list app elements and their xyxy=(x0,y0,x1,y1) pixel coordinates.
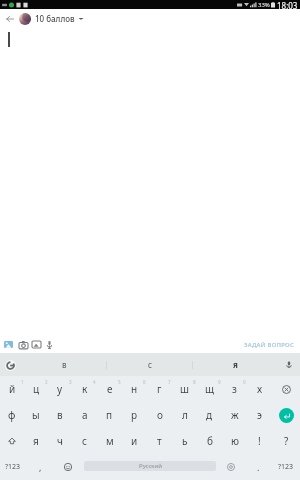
button[interactable]: с xyxy=(72,428,97,454)
staticText: б xyxy=(207,434,213,448)
button[interactable]: 9 xyxy=(197,376,222,402)
button[interactable]: Gallery xyxy=(30,336,43,353)
staticText: ю xyxy=(231,434,239,448)
button[interactable]: я xyxy=(193,353,278,376)
staticText: н xyxy=(131,382,138,396)
staticText: р xyxy=(131,408,138,422)
button[interactable]: 4 xyxy=(72,376,97,402)
button[interactable]: 8 xyxy=(172,376,197,402)
staticText: л xyxy=(182,408,188,422)
button[interactable]: а xyxy=(72,402,97,428)
button[interactable]: Backspace xyxy=(272,376,300,402)
button[interactable]: 5 xyxy=(97,376,122,402)
staticText: к xyxy=(82,382,88,396)
button[interactable]: ЗАДАЙ ВОПРОС xyxy=(236,336,300,353)
button[interactable]: Keyboard settings xyxy=(218,454,244,480)
button[interactable]: Русский xyxy=(84,461,216,471)
staticText: с xyxy=(82,434,87,448)
staticText: у xyxy=(57,382,63,396)
button[interactable]: п xyxy=(97,402,122,428)
staticText: 1 xyxy=(21,379,24,385)
button[interactable]: Voice input xyxy=(283,359,295,371)
staticText: я xyxy=(233,359,238,370)
staticText: д xyxy=(206,408,213,422)
staticText: а xyxy=(82,408,88,422)
button[interactable]: ?123 xyxy=(272,454,300,480)
button[interactable]: 10 баллов xyxy=(19,8,84,29)
staticText: ? xyxy=(284,434,289,448)
button[interactable]: р xyxy=(122,402,147,428)
button[interactable]: д xyxy=(197,402,222,428)
staticText: Русский xyxy=(139,462,162,470)
staticText: ы xyxy=(32,408,40,422)
staticText: ф xyxy=(8,408,16,422)
staticText: ж xyxy=(231,408,239,422)
button[interactable]: ю xyxy=(222,428,247,454)
staticText: 7 xyxy=(168,379,171,385)
staticText: 8 xyxy=(193,379,196,385)
button[interactable]: 3 xyxy=(48,376,72,402)
button[interactable]: л xyxy=(172,402,197,428)
staticText: э xyxy=(257,408,262,422)
button[interactable]: 1 xyxy=(0,376,24,402)
button[interactable]: . xyxy=(244,454,272,480)
button[interactable]: Shift xyxy=(0,428,24,454)
staticText: ?123 xyxy=(5,462,21,472)
button[interactable]: 6 xyxy=(122,376,147,402)
button[interactable]: , xyxy=(26,454,54,480)
staticText: 10 баллов xyxy=(35,13,75,24)
button[interactable]: ы xyxy=(24,402,48,428)
button[interactable]: Google Search xyxy=(3,358,17,372)
button[interactable]: м xyxy=(97,428,122,454)
staticText: 0 xyxy=(243,379,246,385)
button[interactable]: ! xyxy=(247,428,272,454)
button[interactable]: х xyxy=(247,376,272,402)
staticText: 5 xyxy=(118,379,121,385)
button[interactable]: я xyxy=(24,428,48,454)
button[interactable]: 2 xyxy=(24,376,48,402)
button[interactable]: Camera xyxy=(17,336,30,353)
staticText: . xyxy=(257,461,260,473)
staticText: ч xyxy=(57,434,63,448)
button[interactable]: ч xyxy=(48,428,72,454)
staticText: ш xyxy=(180,382,189,396)
button[interactable]: Attach image xyxy=(0,336,17,353)
staticText: 3 xyxy=(69,379,72,385)
button[interactable]: 7 xyxy=(147,376,172,402)
button[interactable]: в xyxy=(48,402,72,428)
staticText: в xyxy=(62,359,67,370)
staticText: п xyxy=(106,408,113,422)
staticText: г xyxy=(157,382,162,396)
button[interactable]: ь xyxy=(172,428,197,454)
button[interactable]: Emoji xyxy=(54,454,82,480)
staticText: и xyxy=(131,434,138,448)
button[interactable]: б xyxy=(197,428,222,454)
staticText: ?123 xyxy=(278,462,294,472)
staticText: й xyxy=(9,382,16,396)
staticText: 18:03 xyxy=(277,0,298,9)
staticText: , xyxy=(39,461,42,473)
button[interactable]: в xyxy=(22,353,106,376)
button[interactable]: и xyxy=(122,428,147,454)
button[interactable]: Back xyxy=(0,9,19,29)
button[interactable]: 0 xyxy=(222,376,247,402)
button[interactable]: с xyxy=(107,353,192,376)
button[interactable]: ?123 xyxy=(0,454,26,480)
staticText: я xyxy=(33,434,39,448)
staticText: ь xyxy=(182,434,188,448)
staticText: в xyxy=(57,408,63,422)
staticText: м xyxy=(106,434,114,448)
staticText: 4 xyxy=(93,379,96,385)
button[interactable]: о xyxy=(147,402,172,428)
staticText: 33% xyxy=(258,1,270,9)
button[interactable]: ? xyxy=(272,428,300,454)
button[interactable]: Enter xyxy=(272,402,300,428)
button[interactable]: ж xyxy=(222,402,247,428)
button[interactable]: т xyxy=(147,428,172,454)
button[interactable]: Voice input xyxy=(43,336,55,353)
staticText: 6 xyxy=(143,379,146,385)
button[interactable]: ф xyxy=(0,402,24,428)
staticText: 2 xyxy=(45,379,48,385)
staticText: е xyxy=(107,382,113,396)
button[interactable]: э xyxy=(247,402,272,428)
